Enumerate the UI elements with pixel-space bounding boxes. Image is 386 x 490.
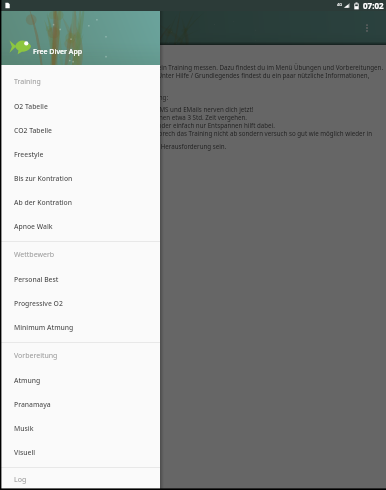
staticText: Personal Best [14,275,59,284]
staticText: 07:02 [363,0,384,11]
staticText: Willkommen beim Apnoe tauchen. Hier kann… [8,63,384,71]
staticText: CO2 Tabelle [14,126,53,135]
staticText: Progressive O2 [14,299,63,308]
staticText: 4G [337,2,343,7]
staticText: - Tauche niemals alleine! Es kann nämlic… [8,142,227,150]
staticText: - Wenn du dich einmal unwohl fühlen soll… [8,129,373,137]
button[interactable]: Visuell [0,440,160,464]
button[interactable]: Bis zur Kontration [0,166,160,190]
staticText: Vorbereitung [14,351,58,361]
button[interactable]: Freestyle [0,142,160,166]
staticText: Free Diver App [33,47,83,57]
button[interactable]: Musik [0,416,160,440]
button[interactable]: Vorbereitung [0,344,160,368]
button[interactable]: Atmung [0,368,160,392]
staticText: Visuell [14,448,36,457]
button[interactable]: Pranamaya [0,392,160,416]
staticText: - Schalte dein Handy bitte in den Flugmo… [8,105,254,113]
staticText: Apnoe Walk [14,222,53,231]
button[interactable]: Log [0,469,160,490]
staticText: O2 Tabelle [14,102,48,111]
button[interactable]: Personal Best [0,267,160,291]
button[interactable]: Minimum Atmung [0,315,160,339]
staticText: - Entspanne dich vor dem Training. Eine … [8,121,275,129]
button[interactable]: Wettbewerb [0,243,160,267]
staticText: Bevor du beginnst lese bitte die Warnung… [8,71,370,79]
staticText: Musik [14,424,34,433]
staticText: Bis zur Kontration [14,174,73,183]
staticText: Pranamaya [14,400,51,409]
button[interactable]: Progressive O2 [0,291,160,315]
staticText: Wettbewerb [14,250,55,260]
button[interactable]: More options [359,20,375,36]
button[interactable]: Apnoe Walk [0,214,160,238]
staticText: Training [14,77,41,87]
button[interactable]: O2 Tabelle [0,94,160,118]
staticText: Freestyle [14,150,44,159]
staticText: Log [14,475,27,485]
staticText: Minimum Atmung [14,323,74,332]
button[interactable]: Ab der Kontration [0,190,160,214]
staticText: Beachte bitte die folgenden Punkte vor j… [8,93,169,101]
button[interactable]: Training [0,70,160,94]
staticText: - Nimm dir ausreichend genügend Zeit, de… [8,113,247,121]
staticText: Ab der Kontration [14,198,72,207]
button[interactable]: CO2 Tabelle [0,118,160,142]
staticText: Atmung [14,376,41,385]
